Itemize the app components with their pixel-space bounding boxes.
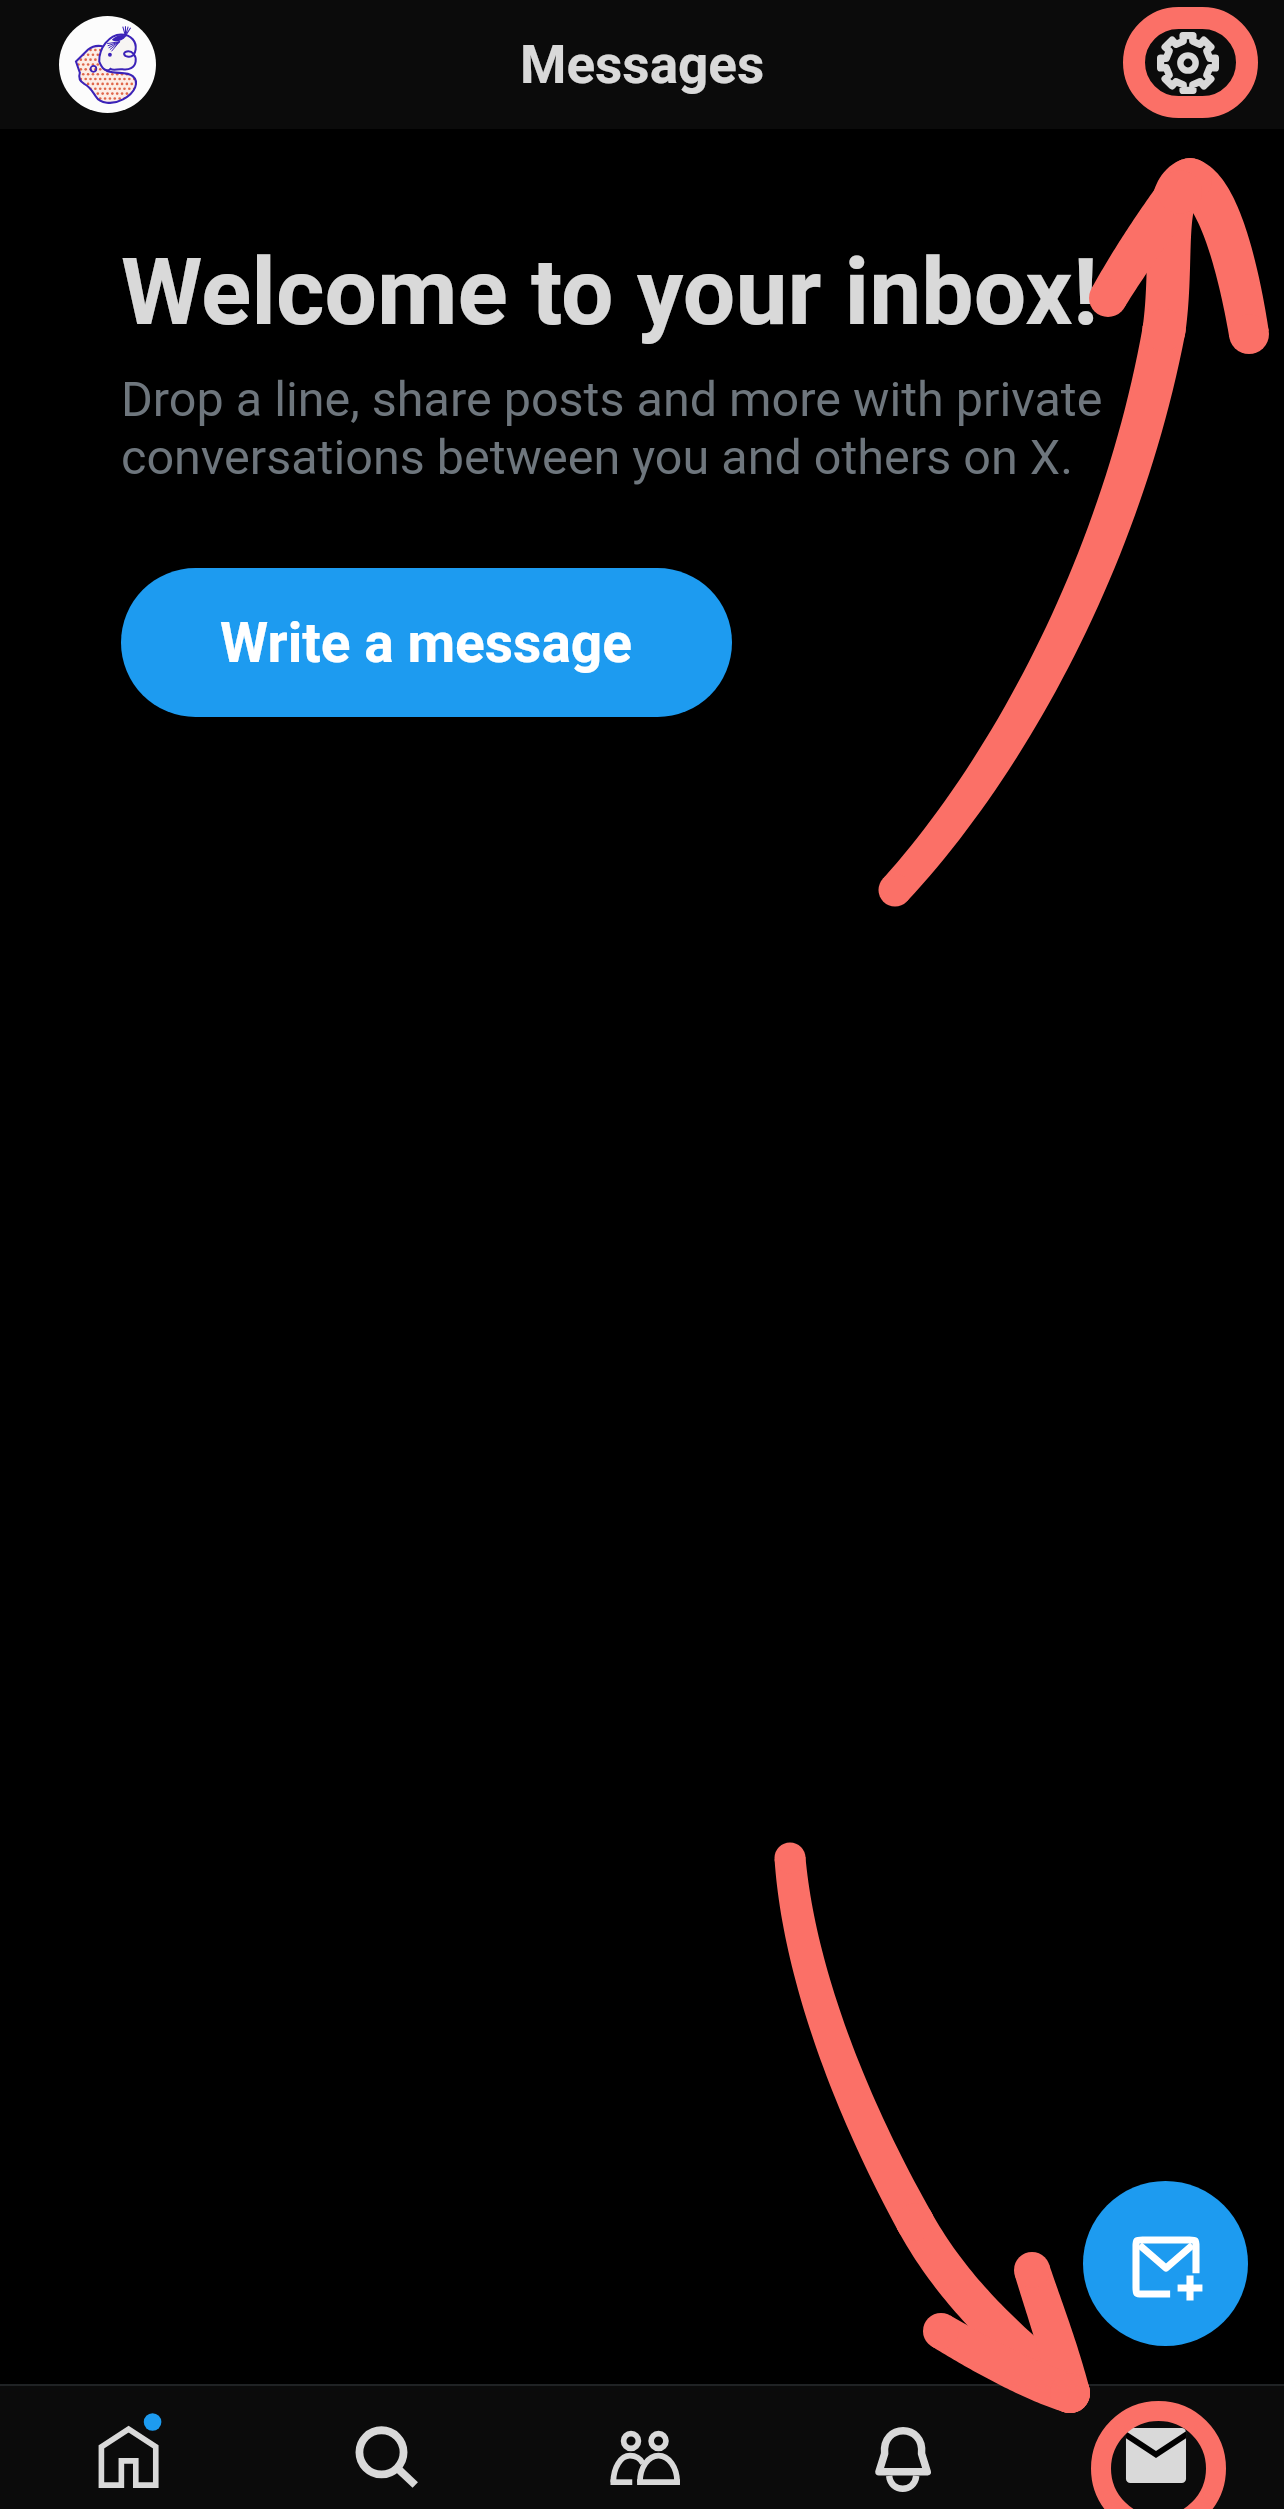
staticText: Welcome to your inbox! (121, 238, 1098, 347)
button[interactable]: Write a message (121, 568, 732, 717)
button[interactable]: Notifications (770, 2386, 1027, 2509)
button[interactable]: Search (256, 2386, 513, 2509)
button[interactable]: Communities (513, 2386, 770, 2509)
button[interactable]: Home (0, 2386, 256, 2509)
staticText: Messages (520, 34, 765, 96)
button[interactable]: Settings (1133, 8, 1243, 118)
button[interactable]: New message (1083, 2181, 1248, 2346)
staticText: Write a message (220, 611, 633, 675)
staticText: Drop a line, share posts and more with p… (121, 371, 1103, 486)
button[interactable]: Messages (1027, 2386, 1284, 2509)
button[interactable]: Profile (59, 16, 156, 113)
